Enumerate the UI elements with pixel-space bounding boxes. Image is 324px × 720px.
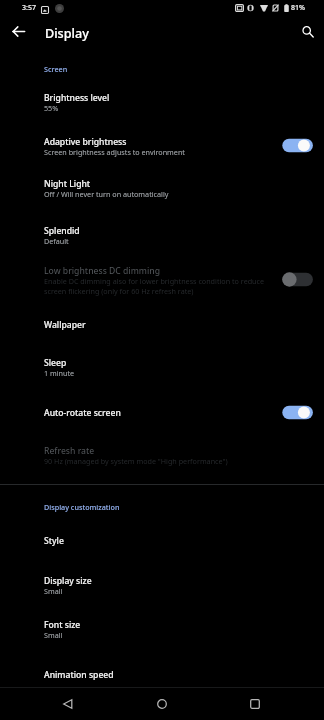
staticText: Adaptive brightness [44,136,127,148]
button[interactable]: Home [142,688,182,720]
staticText: 1 minute [44,368,75,378]
staticText: Off / Will never turn on automatically [44,189,169,199]
button[interactable]: Switch on [282,404,314,421]
button[interactable]: Refresh rate [0,434,324,474]
button[interactable]: Display size [0,564,324,604]
button[interactable]: Auto-rotate screen [0,396,324,426]
staticText: Wallpaper [44,319,86,331]
button[interactable]: Low brightness DC dimming [0,254,324,304]
button[interactable]: Night Light [0,167,324,207]
staticText: Display [45,25,89,42]
staticText: 55% [44,103,59,113]
button[interactable]: Brightness level [0,81,324,121]
staticText: Small [44,586,63,596]
button[interactable]: Splendid [0,214,324,254]
staticText: Screen [44,64,68,74]
staticText: Animation speed [44,669,114,681]
staticText: 90 Hz (managed by system mode "High perf… [44,456,228,466]
staticText: Small [44,630,63,640]
staticText: 3:57 [22,3,36,13]
staticText: Display customization [44,502,120,512]
button[interactable]: Adaptive brightness [0,125,324,165]
staticText: 81% [291,3,305,13]
staticText: Default [44,236,69,246]
staticText: Auto-rotate screen [44,407,121,419]
staticText: Enable DC dimming also for lower brightn… [44,276,265,297]
staticText: Refresh rate [44,445,95,457]
staticText: Sleep [44,357,67,369]
button[interactable]: Animation speed [0,658,324,678]
button[interactable]: Back [48,688,88,720]
staticText: Low brightness DC dimming [44,265,160,277]
staticText: Night Light [44,178,91,190]
button[interactable]: Font size [0,608,324,648]
staticText: Style [44,535,64,547]
staticText: Brightness level [44,92,110,104]
button[interactable]: Switch on [282,137,314,154]
button[interactable]: Sleep [0,346,324,386]
button[interactable]: Style [0,524,324,554]
staticText: Splendid [44,225,80,237]
button[interactable]: Recent apps [235,688,275,720]
button[interactable]: Search [295,19,321,45]
button[interactable]: Navigate up [5,18,31,44]
staticText: Font size [44,619,81,631]
button[interactable]: Wallpaper [0,308,324,338]
button[interactable]: Switch off [282,271,314,288]
staticText: Screen brightness adjusts to environment [44,147,185,157]
staticText: Display size [44,575,92,587]
